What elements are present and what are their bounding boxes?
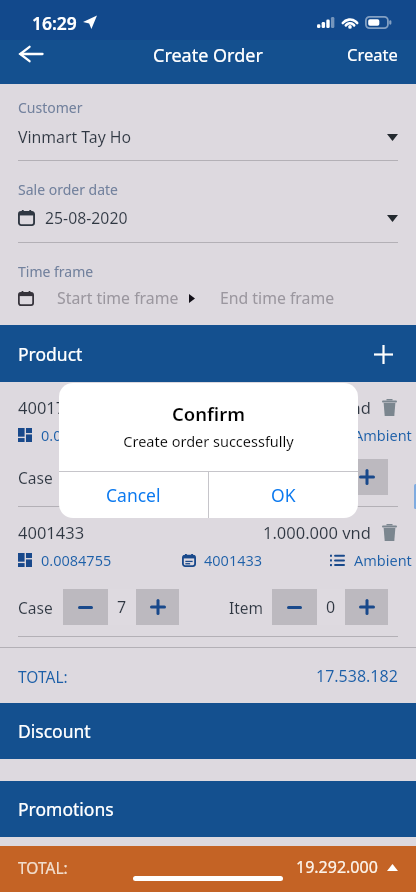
- staticText: 16:29: [32, 11, 77, 35]
- button[interactable]: Create: [329, 34, 416, 74]
- staticText: 4001433: [204, 550, 263, 570]
- staticText: 0.0084755: [41, 550, 112, 570]
- button[interactable]: OK: [209, 472, 358, 518]
- button[interactable]: Cancel: [59, 472, 208, 518]
- staticText: Create order successfully: [59, 431, 358, 451]
- button[interactable]: Delete: [380, 397, 398, 417]
- staticText: Promotions: [18, 797, 114, 821]
- staticText: 4001433: [18, 521, 263, 543]
- button[interactable]: Increase: [345, 459, 388, 495]
- staticText: Time frame: [18, 262, 94, 281]
- button[interactable]: Back: [0, 34, 62, 74]
- staticText: 4001433: [204, 425, 263, 445]
- staticText: Customer: [18, 98, 83, 117]
- button[interactable]: Start time frame: [0, 284, 416, 312]
- button[interactable]: 4001433: [182, 550, 263, 570]
- staticText: 40017: [18, 396, 263, 418]
- staticText: 0: [326, 596, 336, 618]
- button[interactable]: Delete: [380, 522, 398, 542]
- staticText: 19.292.000: [296, 856, 378, 878]
- button[interactable]: Decrease: [63, 589, 108, 625]
- button[interactable]: Increase: [136, 459, 179, 495]
- button[interactable]: 4001433: [182, 425, 263, 445]
- staticText: Case: [18, 467, 53, 488]
- staticText: 7: [117, 596, 127, 618]
- staticText: Sale order date: [18, 180, 119, 199]
- staticText: 1.000.000 vnd: [263, 521, 371, 543]
- button[interactable]: Promotions: [0, 781, 416, 837]
- staticText: 0: [326, 466, 336, 488]
- staticText: Confirm: [59, 401, 358, 426]
- staticText: Discount: [18, 719, 91, 743]
- staticText: TOTAL:: [18, 857, 296, 878]
- button[interactable]: Decrease: [272, 459, 317, 495]
- staticText: Product: [18, 342, 83, 366]
- staticText: Ambient: [354, 425, 412, 445]
- button[interactable]: 0.0084755: [18, 425, 112, 445]
- button[interactable]: Increase: [136, 589, 179, 625]
- staticText: Create: [347, 43, 398, 65]
- staticText: 0.0084755: [41, 425, 112, 445]
- button[interactable]: Decrease: [63, 459, 108, 495]
- staticText: Item: [229, 467, 264, 488]
- staticText: 7: [117, 466, 127, 488]
- staticText: OK: [271, 483, 296, 507]
- staticText: Case: [18, 597, 53, 618]
- staticText: 17.538.182: [316, 665, 398, 687]
- staticText: Vinmart Tay Ho: [18, 126, 387, 148]
- button[interactable]: Ambient: [330, 550, 412, 570]
- button[interactable]: 25-08-2020: [18, 207, 398, 229]
- button[interactable]: Add product: [359, 330, 407, 378]
- staticText: Ambient: [354, 550, 412, 570]
- staticText: 25-08-2020: [45, 207, 387, 229]
- staticText: TOTAL:: [18, 666, 316, 687]
- button[interactable]: Decrease: [272, 589, 317, 625]
- button[interactable]: 0.0084755: [18, 550, 112, 570]
- button[interactable]: Increase: [345, 589, 388, 625]
- button[interactable]: Ambient: [330, 425, 412, 445]
- staticText: End time frame: [220, 287, 335, 309]
- staticText: Create Order: [153, 43, 263, 68]
- staticText: 1.000.000 vnd: [263, 396, 371, 418]
- staticText: Cancel: [106, 483, 161, 507]
- button[interactable]: Vinmart Tay Ho: [18, 126, 398, 148]
- staticText: Item: [229, 597, 264, 618]
- button[interactable]: Discount: [0, 703, 416, 759]
- staticText: Start time frame: [57, 287, 179, 309]
